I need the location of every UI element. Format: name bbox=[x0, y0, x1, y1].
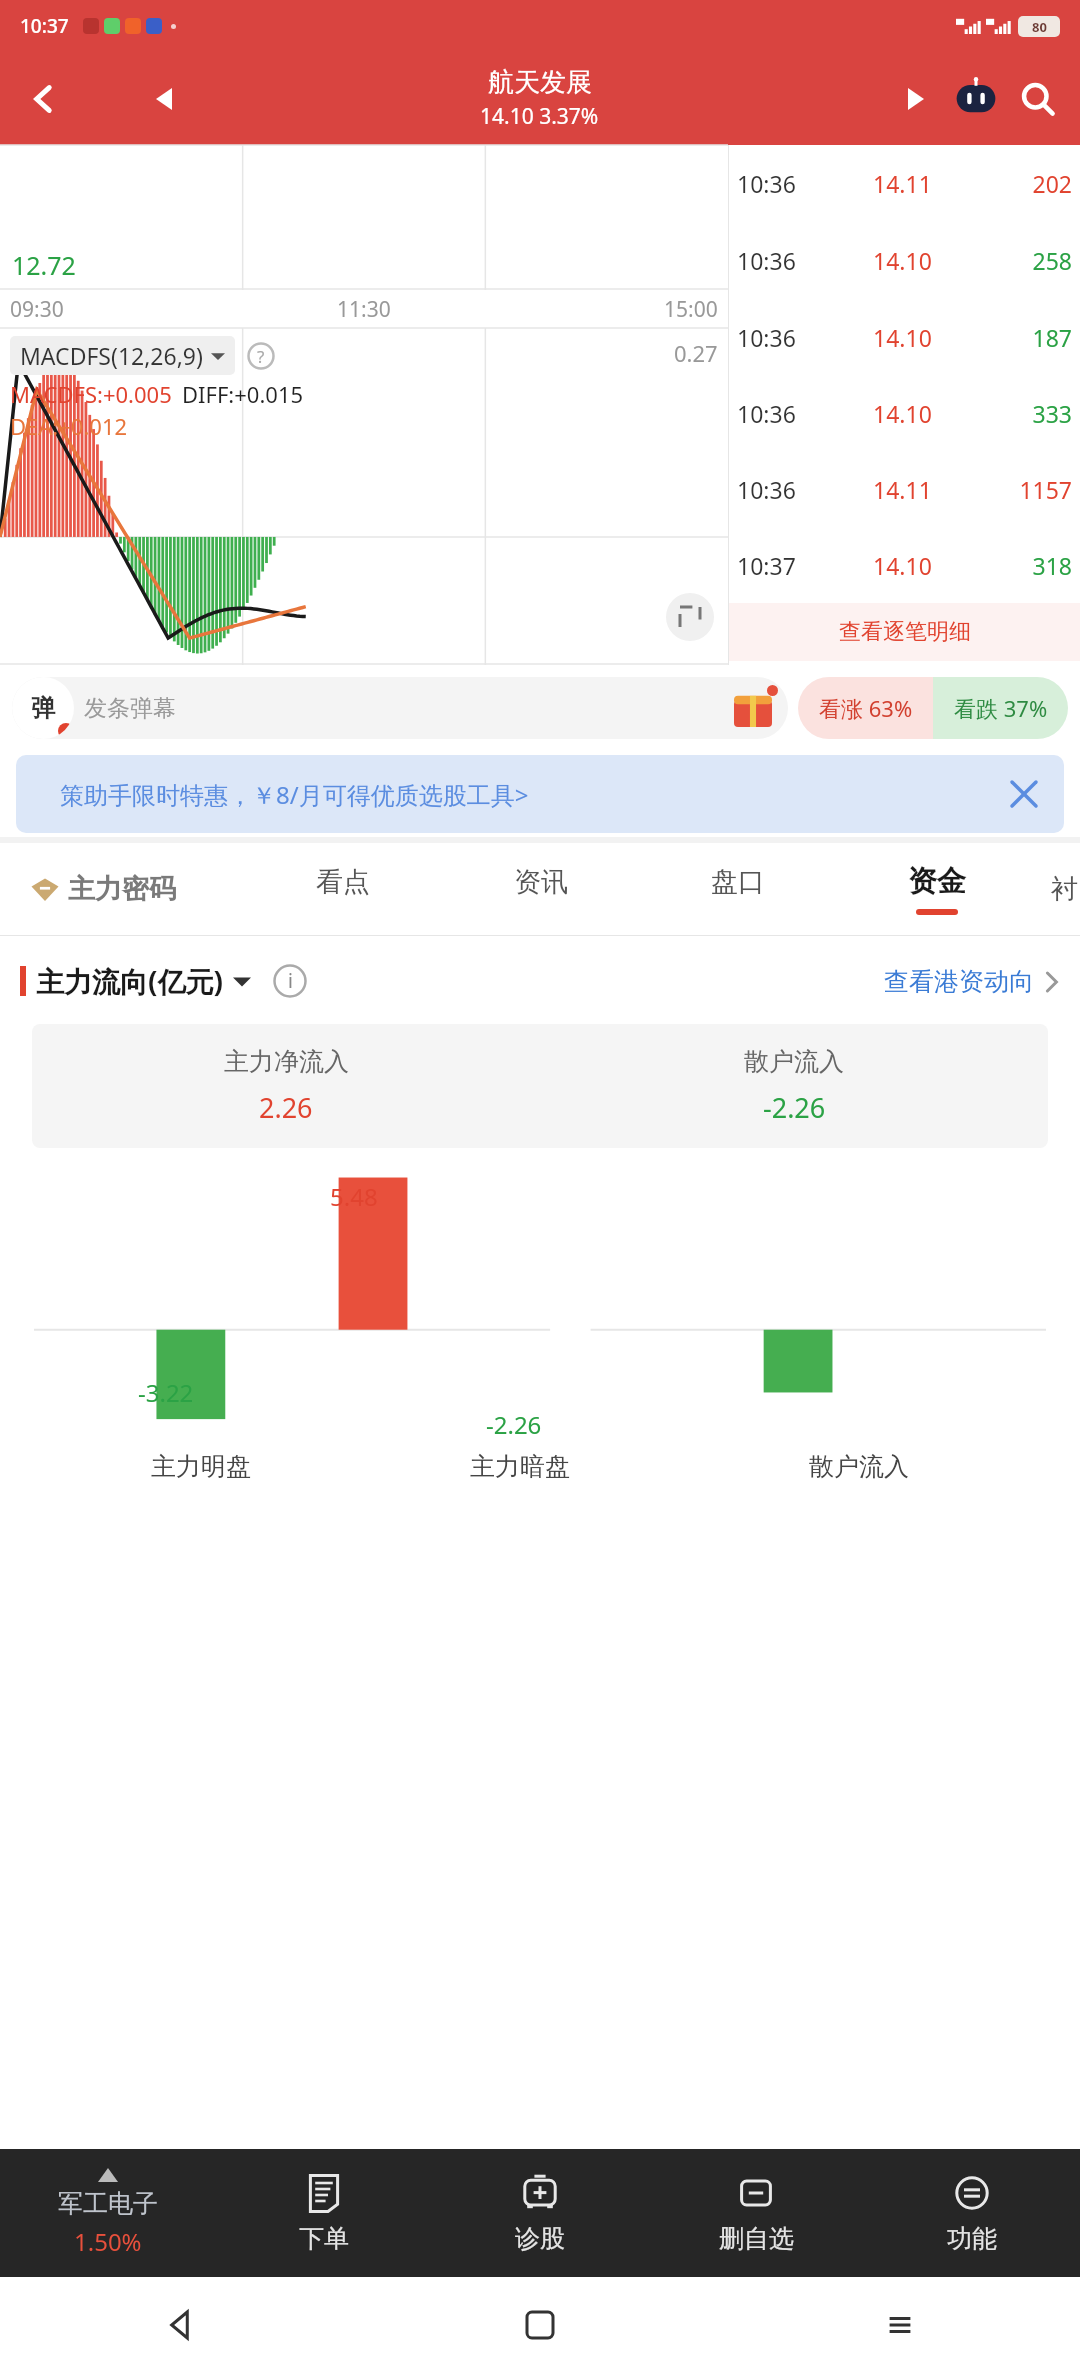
staticText: 318 bbox=[1010, 550, 1072, 581]
button[interactable]: 看点 bbox=[312, 865, 374, 914]
button[interactable]: 10:36 bbox=[729, 375, 1080, 451]
button[interactable]: Fullscreen chart bbox=[666, 593, 714, 641]
button[interactable]: 查看逐笔明细 bbox=[729, 603, 1080, 661]
staticText: 散户流入 bbox=[809, 1451, 909, 1482]
staticText: 盘口 bbox=[711, 865, 765, 899]
staticText: 14.10 bbox=[873, 398, 932, 429]
staticText: 5.48 bbox=[330, 1180, 378, 1213]
button[interactable]: MACDFS(12,26,9) bbox=[10, 336, 235, 375]
staticText: 功能 bbox=[947, 2223, 997, 2254]
staticText: 散户流入 bbox=[744, 1046, 844, 1077]
staticText: 航天发展 bbox=[488, 66, 592, 99]
button[interactable]: Next stock bbox=[892, 75, 940, 123]
button[interactable]: 10:36 bbox=[729, 222, 1080, 299]
staticText: 主力净流入 bbox=[224, 1046, 349, 1077]
staticText: -2.26 bbox=[763, 1089, 826, 1126]
staticText: 258 bbox=[1010, 245, 1072, 276]
button[interactable]: Close banner bbox=[1000, 770, 1048, 818]
staticText: 10:37 bbox=[20, 13, 69, 39]
staticText: 333 bbox=[1010, 398, 1072, 429]
staticText: 0.27 bbox=[674, 338, 718, 368]
button[interactable]: 功能 bbox=[864, 2149, 1080, 2277]
button[interactable]: Back bbox=[0, 2277, 360, 2373]
button[interactable]: 盘口 bbox=[707, 865, 769, 914]
staticText: 主力流向(亿元) bbox=[36, 962, 223, 1000]
button[interactable]: 主力密码 bbox=[30, 872, 176, 906]
staticText: 10:36 bbox=[737, 245, 796, 276]
button[interactable]: Home bbox=[360, 2277, 720, 2373]
staticText: 查看港资动向 bbox=[884, 966, 1034, 997]
button[interactable]: 看涨 63% bbox=[798, 677, 933, 739]
staticText: 资讯 bbox=[514, 865, 568, 899]
button[interactable]: 弹 bbox=[12, 677, 788, 739]
staticText: 10:36 bbox=[737, 322, 796, 353]
staticText: 主力暗盘 bbox=[470, 1451, 570, 1482]
button[interactable]: 10:36 bbox=[729, 145, 1080, 222]
button[interactable]: 资讯 bbox=[510, 865, 572, 914]
staticText: 诊股 bbox=[515, 2223, 565, 2254]
staticText: DIFF:+0.015 bbox=[182, 379, 304, 409]
button[interactable]: 查看港资动向 bbox=[884, 966, 1060, 997]
staticText: 1157 bbox=[1010, 474, 1072, 505]
staticText: 主力密码 bbox=[68, 872, 176, 906]
staticText: 10:36 bbox=[737, 474, 796, 505]
staticText: 下单 bbox=[299, 2223, 349, 2254]
button[interactable]: 10:37 bbox=[729, 527, 1080, 603]
button[interactable]: 下单 bbox=[216, 2149, 432, 2277]
button[interactable]: 删自选 bbox=[648, 2149, 864, 2277]
button[interactable]: 10:36 bbox=[729, 451, 1080, 527]
staticText: 策助手限时特惠，￥8/月可得优质选股工具> bbox=[60, 778, 529, 811]
staticText: -3.22 bbox=[138, 1376, 194, 1409]
staticText: 看涨 63% bbox=[819, 693, 913, 723]
button[interactable]: 10:36 bbox=[729, 299, 1080, 375]
button[interactable]: 航天发展 bbox=[480, 66, 599, 131]
button[interactable]: 军工电子 bbox=[0, 2168, 216, 2258]
button[interactable]: Indicator help bbox=[247, 342, 275, 370]
button[interactable]: 诊股 bbox=[432, 2149, 648, 2277]
button[interactable]: 主力流向(亿元) bbox=[36, 962, 251, 1000]
staticText: 187 bbox=[1010, 322, 1072, 353]
staticText: 看跌 37% bbox=[954, 693, 1048, 723]
staticText: 10:36 bbox=[737, 398, 796, 429]
staticText: 15:00 bbox=[664, 295, 718, 324]
staticText: 14.10 bbox=[873, 550, 932, 581]
staticText: 弹 bbox=[31, 693, 55, 723]
staticText: 14.11 bbox=[873, 474, 932, 505]
staticText: 202 bbox=[1010, 168, 1072, 199]
staticText: 14.10 bbox=[873, 245, 932, 276]
button[interactable]: Recents bbox=[720, 2277, 1080, 2373]
staticText: 主力明盘 bbox=[151, 1451, 251, 1482]
staticText: i bbox=[288, 968, 293, 994]
button[interactable]: Info bbox=[273, 964, 307, 998]
staticText: MACDFS:+0.005 bbox=[10, 379, 172, 409]
button[interactable]: Previous stock bbox=[140, 75, 188, 123]
staticText: 发条弹幕 bbox=[84, 694, 176, 723]
button[interactable]: AI assistant bbox=[950, 73, 1002, 125]
button[interactable]: 策助手限时特惠，￥8/月可得优质选股工具> bbox=[16, 755, 1064, 833]
staticText: 14.10 bbox=[873, 322, 932, 353]
staticText: 资金 bbox=[908, 863, 966, 900]
button[interactable]: 资金 bbox=[904, 863, 970, 915]
staticText: 10:36 bbox=[737, 168, 796, 199]
staticText: MACDFS(12,26,9) bbox=[20, 340, 203, 371]
staticText: 看点 bbox=[316, 865, 370, 899]
staticText: 删自选 bbox=[719, 2223, 794, 2254]
staticText: ? bbox=[257, 345, 265, 368]
staticText: 09:30 bbox=[10, 295, 64, 324]
button[interactable]: 看跌 37% bbox=[933, 677, 1068, 739]
button[interactable]: Back bbox=[16, 71, 72, 127]
staticText: 11:30 bbox=[337, 295, 391, 324]
staticText: 1.50% bbox=[74, 2225, 142, 2258]
staticText: 14.11 bbox=[873, 168, 932, 199]
button[interactable]: Search bbox=[1012, 73, 1064, 125]
staticText: 14.10 3.37% bbox=[480, 102, 599, 131]
staticText: 12.72 bbox=[12, 248, 76, 282]
button[interactable]: 衬 bbox=[1051, 872, 1078, 906]
staticText: 2.26 bbox=[259, 1089, 313, 1126]
staticText: 军工电子 bbox=[58, 2188, 158, 2219]
staticText: -2.26 bbox=[486, 1408, 542, 1441]
staticText: 10:37 bbox=[737, 550, 796, 581]
staticText: DEA:+0.012 bbox=[10, 411, 128, 441]
staticText: 80 bbox=[1032, 18, 1047, 36]
staticText: 查看逐笔明细 bbox=[839, 618, 971, 646]
